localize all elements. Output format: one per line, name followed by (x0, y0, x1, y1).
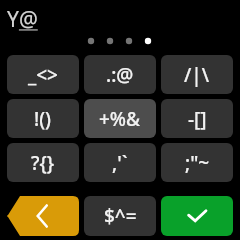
staticText: ?{} (31, 150, 55, 176)
button[interactable]: Enter (161, 196, 233, 236)
staticText: -[] (188, 106, 207, 132)
button[interactable]: ;"~ (161, 143, 233, 182)
staticText: ;"~ (185, 150, 210, 176)
button[interactable]: -[] (161, 99, 233, 138)
button[interactable]: Backspace (7, 196, 79, 236)
staticText: +%& (99, 106, 141, 132)
button[interactable]: $^= (84, 196, 156, 236)
staticText: $^= (104, 203, 137, 229)
staticText: !() (34, 106, 52, 132)
button[interactable]: /|\ (161, 55, 233, 94)
staticText: .:@ (106, 62, 134, 88)
button[interactable]: +%& (84, 99, 156, 138)
button[interactable]: _<> (7, 55, 79, 94)
button[interactable]: !() (7, 99, 79, 138)
staticText: /|\ (184, 62, 210, 88)
button[interactable]: ,'` (84, 143, 156, 182)
button[interactable]: Y@ (7, 5, 77, 31)
staticText: _<> (28, 62, 58, 88)
staticText: Y@ (7, 5, 38, 31)
button[interactable]: .:@ (84, 55, 156, 94)
button[interactable]: ?{} (7, 143, 79, 182)
staticText: ,'` (112, 150, 128, 176)
